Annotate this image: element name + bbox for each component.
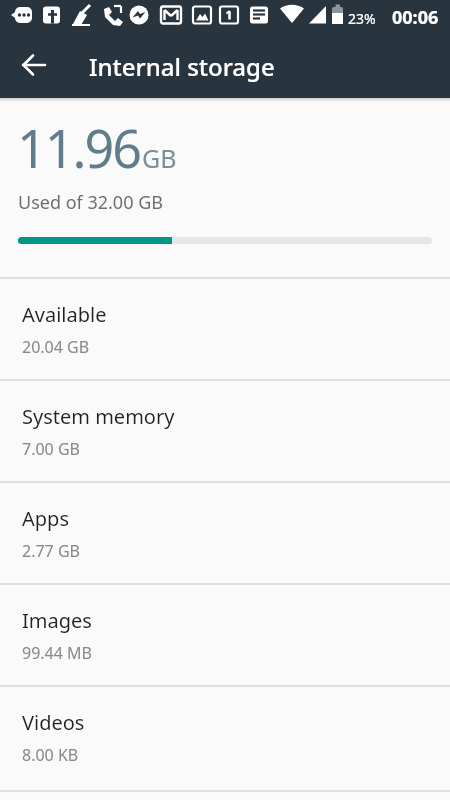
button[interactable] (12, 52, 56, 78)
staticText: 00:06 (392, 5, 439, 30)
staticText: 7.00 GB (22, 438, 80, 460)
staticText: Used of 32.00 GB (18, 190, 163, 215)
staticText: Videos (22, 709, 85, 736)
button[interactable]: Images (0, 585, 450, 687)
button[interactable]: System memory (0, 381, 450, 483)
button[interactable]: Videos (0, 687, 450, 792)
button[interactable]: Available (0, 279, 450, 381)
staticText: 11.96 (17, 112, 140, 183)
staticText: GB (142, 141, 177, 175)
staticText: Internal storage (89, 50, 275, 83)
staticText: 8.00 KB (22, 744, 79, 766)
staticText: Images (22, 607, 92, 634)
staticText: Available (22, 301, 107, 328)
staticText: 2.77 GB (22, 540, 80, 562)
button[interactable]: Apps (0, 483, 450, 585)
staticText: 20.04 GB (22, 336, 90, 358)
staticText: Apps (22, 505, 69, 532)
staticText: 23% (348, 9, 376, 28)
staticText: 99.44 MB (22, 642, 92, 664)
staticText: System memory (22, 403, 175, 430)
